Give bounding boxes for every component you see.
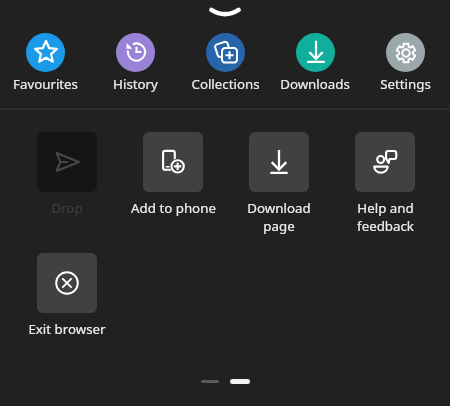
button[interactable]: Download page bbox=[226, 132, 332, 235]
button[interactable]: Drop bbox=[14, 132, 120, 217]
staticText: Exit browser bbox=[28, 320, 106, 338]
button[interactable]: Favourites bbox=[0, 20, 90, 93]
staticText: Download page bbox=[247, 199, 311, 235]
button[interactable]: Collections bbox=[180, 20, 270, 93]
staticText: Help and feedback bbox=[357, 199, 414, 235]
staticText: History bbox=[113, 75, 158, 93]
button[interactable]: Help and feedback bbox=[332, 132, 438, 235]
button[interactable]: Add to phone bbox=[120, 132, 226, 217]
staticText: Add to phone bbox=[131, 199, 216, 217]
staticText: Drop bbox=[51, 199, 83, 217]
button[interactable]: Settings bbox=[360, 20, 450, 93]
staticText: Downloads bbox=[280, 75, 350, 93]
button[interactable]: Exit browser bbox=[14, 253, 120, 338]
staticText: Favourites bbox=[13, 75, 78, 93]
button[interactable]: Downloads bbox=[270, 20, 360, 93]
button[interactable]: History bbox=[90, 20, 180, 93]
staticText: Settings bbox=[380, 75, 431, 93]
staticText: Collections bbox=[191, 75, 260, 93]
